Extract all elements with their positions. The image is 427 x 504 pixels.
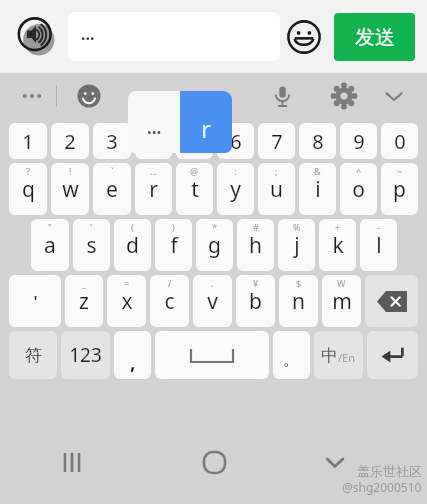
staticText: c — [164, 287, 175, 316]
staticText: 0 — [394, 128, 406, 155]
button[interactable]: b — [236, 275, 275, 327]
button[interactable]: Hide keyboard — [285, 436, 427, 488]
button[interactable]: l — [360, 219, 397, 271]
button[interactable]: g — [196, 219, 233, 271]
staticText: 中 — [321, 345, 338, 366]
staticText: u — [270, 175, 283, 204]
button[interactable]: 123 — [61, 331, 110, 379]
staticText: ... — [147, 116, 162, 139]
staticText: k — [332, 231, 344, 260]
staticText: . — [211, 277, 214, 289]
button[interactable]: s — [73, 219, 110, 271]
button[interactable]: 3 — [93, 123, 131, 159]
staticText: ! — [69, 165, 72, 177]
button[interactable]: v — [193, 275, 232, 327]
staticText: _ — [82, 277, 86, 289]
button[interactable]: Sticker — [71, 78, 107, 114]
button[interactable]: a — [31, 219, 69, 271]
staticText: z — [79, 287, 89, 316]
staticText: w — [62, 175, 79, 204]
staticText: & — [314, 165, 321, 177]
button[interactable]: x — [107, 275, 146, 327]
button[interactable]: ' — [9, 275, 61, 327]
staticText: ; — [275, 165, 278, 177]
staticText: 3 — [106, 128, 118, 155]
staticText: $ — [296, 277, 302, 289]
staticText: 8 — [312, 128, 324, 155]
button[interactable]: 中 — [314, 331, 363, 379]
button[interactable]: h — [237, 219, 274, 271]
button[interactable]: Emoji — [282, 15, 326, 59]
staticText: 6 — [230, 128, 242, 155]
button[interactable]: Hide keyboard — [375, 77, 413, 115]
button[interactable]: r — [135, 163, 172, 215]
button[interactable]: Home — [143, 436, 285, 488]
staticText: " — [48, 221, 52, 233]
button[interactable]: i — [299, 163, 336, 215]
button[interactable]: o — [340, 163, 377, 215]
button[interactable]: n — [279, 275, 318, 327]
staticText: ' — [90, 221, 93, 233]
staticText: 123 — [69, 342, 102, 368]
staticText: 2 — [64, 128, 76, 155]
button[interactable]: d — [114, 219, 151, 271]
button[interactable]: w — [51, 163, 89, 215]
staticText: ? — [26, 165, 30, 177]
button[interactable]: 4 — [135, 123, 172, 159]
staticText: 1 — [22, 128, 34, 155]
staticText: f — [170, 231, 178, 260]
button[interactable]: m — [322, 275, 361, 327]
staticText: y — [230, 175, 241, 204]
staticText: * — [212, 221, 217, 233]
button[interactable]: q — [9, 163, 47, 215]
staticText: x — [121, 287, 133, 316]
staticText: t — [191, 175, 199, 204]
button[interactable]: 5 — [176, 123, 213, 159]
button[interactable]: 发送 — [334, 13, 415, 61]
button[interactable]: z — [65, 275, 103, 327]
button[interactable]: y — [217, 163, 254, 215]
staticText: b — [249, 287, 262, 316]
button[interactable]: u — [258, 163, 295, 215]
button[interactable]: Settings — [325, 77, 363, 115]
staticText: o — [352, 175, 365, 204]
button[interactable]: 。 — [273, 331, 310, 379]
button[interactable]: , — [114, 331, 151, 379]
staticText: m — [332, 287, 352, 316]
button[interactable]: More — [14, 78, 50, 114]
button[interactable]: Space — [155, 331, 269, 379]
staticText: 9 — [353, 128, 365, 155]
staticText: , — [130, 349, 136, 375]
button[interactable]: 8 — [299, 123, 336, 159]
button[interactable]: Backspace — [365, 275, 418, 327]
button[interactable]: 1 — [9, 123, 47, 159]
button[interactable]: Voice — [263, 77, 301, 115]
button[interactable]: Recents — [0, 436, 143, 488]
staticText: 。 — [283, 349, 300, 370]
button[interactable]: Voice input — [14, 14, 60, 60]
button[interactable]: 符 — [9, 331, 57, 379]
other: Backspace — [365, 275, 418, 327]
staticText: % — [293, 221, 301, 233]
staticText: r — [201, 112, 211, 145]
button[interactable]: 0 — [381, 123, 418, 159]
button[interactable]: 2 — [51, 123, 89, 159]
staticText: ( — [131, 221, 134, 233]
button[interactable]: c — [150, 275, 189, 327]
staticText: l — [376, 231, 382, 260]
button[interactable]: t — [176, 163, 213, 215]
button[interactable]: f — [155, 219, 192, 271]
staticText: v — [207, 287, 218, 316]
staticText: 符 — [25, 345, 42, 366]
staticText: ... — [150, 165, 158, 177]
button[interactable]: p — [381, 163, 418, 215]
staticText: ' — [33, 290, 38, 313]
button[interactable]: ... — [68, 12, 280, 61]
button[interactable]: 7 — [258, 123, 295, 159]
button[interactable]: e — [93, 163, 131, 215]
button[interactable]: Enter — [367, 331, 418, 379]
button[interactable]: k — [319, 219, 356, 271]
button[interactable]: 9 — [340, 123, 377, 159]
button[interactable]: 6 — [217, 123, 254, 159]
button[interactable]: j — [278, 219, 315, 271]
